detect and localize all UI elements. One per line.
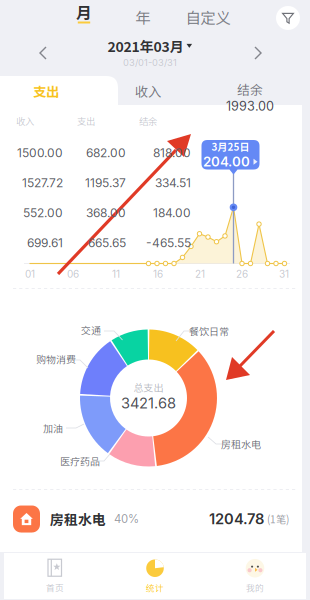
button[interactable]: 收入 [108, 76, 188, 106]
staticText: 结余 [139, 114, 157, 128]
staticText: 818.00 [153, 146, 191, 160]
staticText: 总支出 [133, 380, 163, 394]
button[interactable]: 房租水电 [0, 496, 302, 542]
staticText: 16 [153, 268, 163, 280]
staticText: 加油 [43, 421, 63, 435]
staticText: 首页 [46, 581, 64, 594]
staticText: 06 [67, 268, 79, 280]
staticText: 21 [195, 268, 205, 280]
staticText: 1993.00 [226, 98, 274, 114]
staticText: 368.00 [86, 206, 126, 220]
button[interactable]: 结余 [205, 82, 295, 112]
staticText: 交通 [81, 323, 101, 337]
button[interactable]: 自定义 [182, 2, 234, 32]
staticText: 682.00 [86, 146, 126, 160]
staticText: 我的 [246, 581, 264, 594]
staticText: 收入 [135, 81, 161, 101]
staticText: 699.61 [27, 236, 63, 250]
staticText: 2021年03月 [107, 36, 183, 56]
staticText: 支出 [77, 114, 95, 128]
button[interactable]: 支出 [0, 76, 101, 106]
button[interactable]: 月 [67, 0, 101, 30]
staticText: 医疗药品 [60, 454, 100, 468]
button[interactable]: 统计 [105, 553, 205, 599]
staticText: 自定义 [185, 6, 230, 28]
staticText: 184.00 [153, 206, 191, 220]
staticText: 购物消费 [36, 352, 76, 366]
staticText: 01 [25, 268, 35, 280]
button[interactable]: 2021年03月 [107, 36, 192, 68]
staticText: (1笔) [267, 512, 289, 526]
staticText: 餐饮日常 [189, 324, 229, 338]
staticText: 月 [76, 0, 92, 24]
button[interactable]: Previous month [35, 43, 55, 63]
staticText: 1527.72 [22, 176, 63, 190]
staticText: 552.00 [23, 206, 63, 220]
staticText: 665.65 [88, 236, 126, 250]
staticText: 统计 [146, 581, 164, 594]
staticText: 03/01-03/31 [123, 57, 177, 68]
staticText: 结余 [237, 80, 263, 98]
staticText: 3421.68 [121, 394, 176, 412]
staticText: 40% [114, 512, 139, 526]
staticText: 334.51 [155, 176, 191, 190]
staticText: 支出 [33, 81, 59, 101]
staticText: 1204.78 [209, 510, 264, 528]
staticText: 房租水电 [50, 509, 106, 529]
staticText: 26 [236, 268, 248, 280]
staticText: 11 [112, 268, 120, 280]
staticText: 年 [135, 6, 150, 28]
staticText: 31 [279, 268, 289, 280]
staticText: 1195.37 [85, 176, 126, 190]
button[interactable]: Next month [246, 43, 266, 63]
staticText: 3月25日 [211, 139, 249, 154]
button[interactable]: 我的 [205, 553, 305, 599]
button[interactable]: Filter [276, 6, 300, 30]
button[interactable]: 首页 [5, 553, 105, 599]
staticText: 204.00 [203, 154, 250, 170]
staticText: 房租水电 [221, 437, 261, 451]
button[interactable]: 年 [127, 2, 159, 32]
staticText: 收入 [16, 114, 34, 128]
staticText: 1500.00 [17, 146, 63, 160]
staticText: -465.55 [146, 236, 191, 250]
